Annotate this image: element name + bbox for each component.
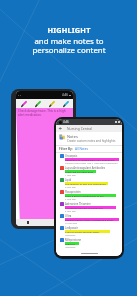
- button[interactable]: Highlighter: [17, 99, 31, 108]
- staticText: Check dosage twice. This is a high alert…: [18, 109, 66, 117]
- button[interactable]: Mifepristone: [56, 237, 122, 249]
- staticText: 12 min ago: [65, 222, 78, 225]
- button[interactable]: Highlighter: [31, 99, 45, 108]
- staticText: Create custom notes and highlights: [67, 139, 116, 143]
- staticText: Nursing Drug Hdbk Feb 4 High alert medic…: [65, 162, 118, 165]
- button[interactable]: Urosepsis: [56, 153, 122, 165]
- button[interactable]: Ultra: [56, 213, 122, 225]
- button[interactable]: Back: [58, 126, 63, 131]
- staticText: Filter By:: [59, 147, 73, 151]
- staticText: Nursing Central: [67, 126, 93, 131]
- staticText: Ultra: [65, 214, 72, 218]
- button[interactable]: Lupus Anticoagulant Antibodies: [56, 165, 122, 177]
- staticText: 5 min ago: [65, 210, 76, 213]
- staticText: The division of fats into alternating si…: [65, 182, 108, 185]
- button[interactable]: Lipid: [56, 177, 122, 189]
- staticText: Urosepsis: [65, 154, 78, 158]
- staticText: Ledipasvir: [65, 226, 78, 230]
- button[interactable]: Close: [63, 220, 68, 225]
- staticText: a direct-acting antiviral agent: [65, 230, 100, 233]
- staticText: Yesterday: [65, 234, 76, 237]
- staticText: 1 min ago: [65, 174, 76, 177]
- staticText: Lupus Anticoagulant Antibodies: [65, 166, 106, 170]
- staticText: and make notes to personalize content: [32, 36, 106, 56]
- staticText: Lipid: [65, 178, 72, 182]
- staticText: Mifepristone: [65, 238, 82, 242]
- button[interactable]: Filter By:: [56, 146, 122, 152]
- button[interactable]: Highlighter: [59, 99, 73, 108]
- staticText: Notes: [67, 134, 78, 139]
- staticText: There are no lupus fluid, or an associat…: [65, 170, 96, 173]
- staticText: Adenosine Thiamine: [65, 202, 91, 206]
- staticText: A common enzyme accounts for approximate…: [65, 206, 116, 209]
- staticText: 4:46: [62, 93, 68, 97]
- staticText: Flexible material effect shaped as a mul…: [65, 218, 119, 221]
- staticText: Plays a part in metabolism of the carboh…: [65, 194, 116, 197]
- button[interactable]: Highlighter: [45, 99, 59, 108]
- button[interactable]: Adenosine Thiamine: [56, 201, 122, 213]
- staticText: All Notes: [75, 147, 88, 151]
- staticText: 3 min ago: [65, 186, 76, 189]
- staticText: Yesterday: [65, 246, 76, 249]
- staticText: HIGHLIGHT: [47, 25, 91, 35]
- staticText: 4 min ago: [65, 198, 76, 201]
- staticText: Flavoprotein: [65, 190, 81, 194]
- button[interactable]: Ledipasvir: [56, 225, 122, 237]
- button[interactable]: Flavoprotein: [56, 189, 122, 201]
- staticText: 4:46: [63, 120, 69, 124]
- button[interactable]: Note: [25, 220, 30, 225]
- staticText: treatment of complicated intra-abdominal…: [65, 158, 119, 161]
- staticText: used for: [65, 242, 75, 245]
